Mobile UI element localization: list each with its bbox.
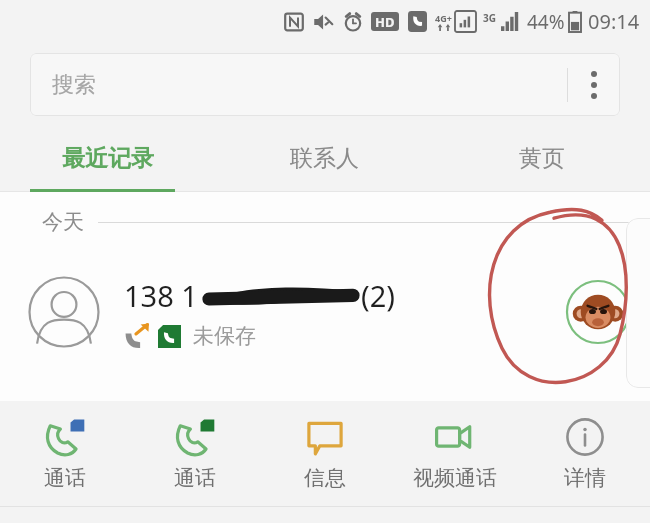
staticText: 4G+ (435, 12, 452, 24)
staticText: 最近记录 (62, 144, 154, 173)
staticText: 09:14 (588, 8, 640, 35)
staticText: 视频通话 (413, 465, 497, 491)
staticText: 搜索 (52, 71, 96, 99)
button[interactable]: 联系人 (216, 127, 433, 189)
button[interactable]: 最近记录 (0, 127, 216, 189)
button[interactable]: 信息 (260, 401, 390, 506)
staticText: 通话 (174, 465, 216, 491)
staticText: 未保存 (193, 323, 256, 349)
button[interactable]: 138 1 (0, 252, 650, 372)
staticText: (2) (361, 276, 395, 315)
staticText: 信息 (304, 465, 346, 491)
button[interactable]: Contact emoji (566, 280, 630, 344)
staticText: 黄页 (519, 144, 565, 173)
button[interactable]: 搜索 (30, 53, 620, 116)
button[interactable]: 视频通话 (390, 401, 520, 506)
staticText: 44% (527, 9, 565, 35)
button[interactable]: 详情 (520, 401, 650, 506)
button[interactable]: More options (568, 53, 620, 116)
staticText: 通话 (44, 465, 86, 491)
staticText: 详情 (564, 465, 606, 491)
staticText: 今天 (42, 209, 84, 235)
staticText: 3G (483, 11, 496, 25)
staticText: 138 1 (124, 276, 198, 315)
button[interactable]: 通话 (0, 401, 130, 506)
button[interactable]: 通话 (130, 401, 260, 506)
staticText: 联系人 (290, 144, 359, 173)
staticText: HD (375, 13, 395, 31)
button[interactable]: 黄页 (433, 127, 650, 189)
